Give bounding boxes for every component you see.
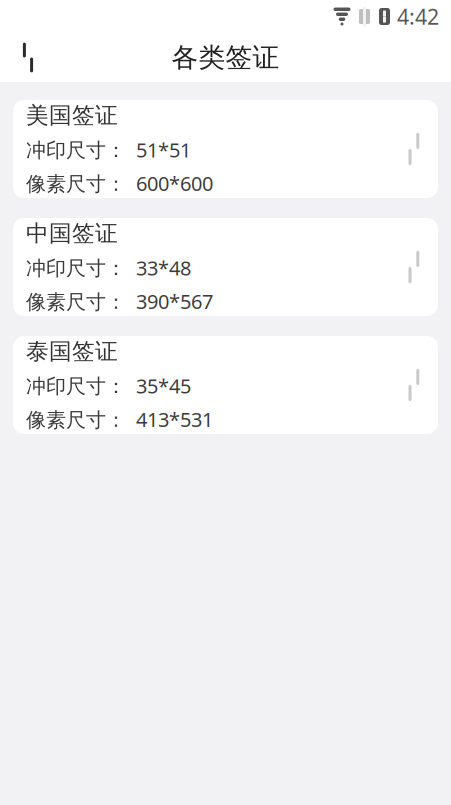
- staticText: 像素尺寸： 413*531: [26, 406, 213, 432]
- staticText: 像素尺寸： 390*567: [26, 288, 213, 314]
- staticText: 美国签证: [26, 101, 118, 129]
- button[interactable]: 美国签证: [13, 100, 438, 198]
- staticText: 4:42: [397, 2, 439, 31]
- staticText: 像素尺寸： 600*600: [26, 170, 213, 196]
- button[interactable]: 中国签证: [13, 218, 438, 316]
- staticText: 冲印尺寸： 51*51: [26, 136, 191, 163]
- button[interactable]: 返回: [6, 35, 50, 79]
- staticText: 泰国签证: [26, 337, 118, 365]
- staticText: 冲印尺寸： 35*45: [26, 372, 191, 399]
- staticText: 中国签证: [26, 219, 118, 247]
- staticText: 冲印尺寸： 33*48: [26, 254, 191, 281]
- button[interactable]: 泰国签证: [13, 336, 438, 434]
- staticText: 各类签证: [171, 41, 279, 74]
